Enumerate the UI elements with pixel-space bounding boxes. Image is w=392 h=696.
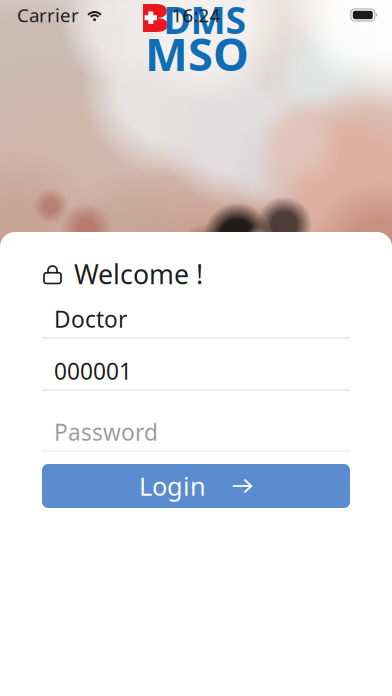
staticText: 000001: [54, 356, 132, 386]
staticText: 16:24: [171, 3, 220, 27]
staticText: Welcome !: [74, 256, 203, 292]
staticText: Login: [139, 469, 206, 503]
staticText: MSO: [145, 23, 249, 84]
staticText: Doctor: [54, 304, 127, 334]
staticText: Password: [54, 417, 158, 447]
staticText: Carrier: [17, 3, 79, 27]
staticText: DMS: [163, 0, 246, 44]
button[interactable]: Login: [42, 464, 350, 508]
